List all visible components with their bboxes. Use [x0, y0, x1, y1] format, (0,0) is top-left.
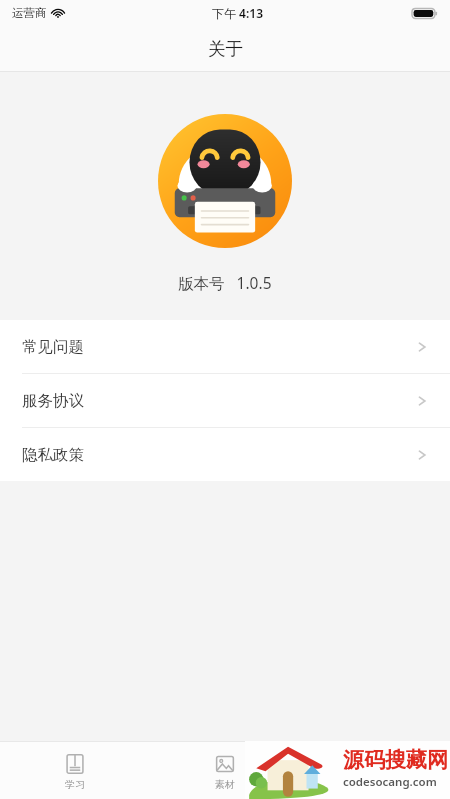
other: 素材 — [214, 753, 236, 775]
button[interactable]: 服务协议 — [0, 374, 450, 427]
button[interactable]: 学习 — [0, 741, 150, 799]
button[interactable]: 素材 — [150, 741, 300, 799]
staticText: 版本号 1.0.5 — [178, 272, 272, 293]
button[interactable]: 隐私政策 — [0, 428, 450, 481]
staticText: 学习 — [65, 778, 85, 791]
staticText: 运营商 — [12, 6, 47, 20]
staticText: 下午 4:13 — [212, 5, 264, 21]
staticText: codesocang.com — [343, 774, 437, 790]
staticText: 隐私政策 — [22, 445, 84, 465]
staticText: 常见问题 — [22, 337, 84, 357]
staticText: 素材 — [215, 778, 235, 791]
staticText: 源码搜藏网 — [343, 747, 448, 773]
staticText: 关于 — [208, 38, 243, 60]
other: 学习 — [64, 753, 86, 775]
staticText: 服务协议 — [22, 391, 84, 411]
button[interactable]: 常见问题 — [0, 320, 450, 373]
